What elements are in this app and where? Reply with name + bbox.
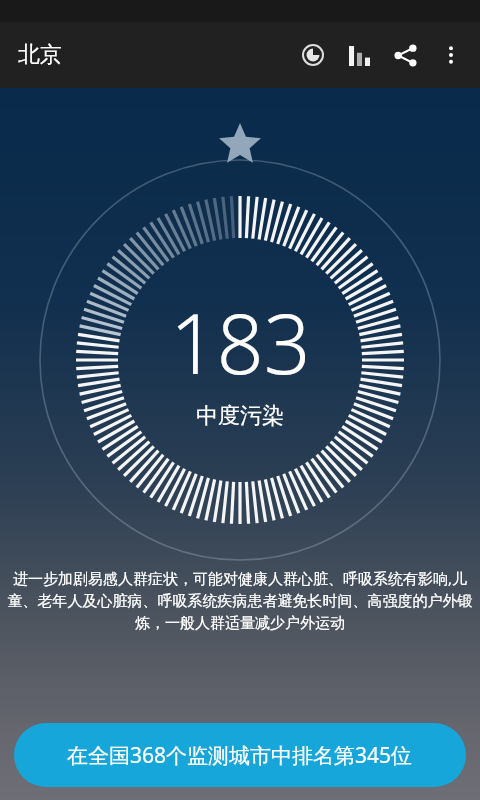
button[interactable]: Share	[382, 32, 428, 78]
button[interactable]: 北京	[14, 37, 66, 73]
button[interactable]: More options	[428, 32, 474, 78]
staticText: 在全国368个监测城市中排名第345位	[67, 741, 413, 770]
button[interactable]: 在全国368个监测城市中排名第345位	[14, 723, 466, 787]
button[interactable]: AQI standard	[290, 32, 336, 78]
staticText: 北京	[18, 41, 62, 69]
staticText: 183	[170, 286, 311, 398]
staticText: 中度污染	[196, 402, 284, 430]
button[interactable]: Charts	[336, 32, 382, 78]
staticText: 进一步加剧易感人群症状，可能对健康人群心脏、呼吸系统有影响,儿童、老年人及心脏病…	[6, 568, 474, 633]
